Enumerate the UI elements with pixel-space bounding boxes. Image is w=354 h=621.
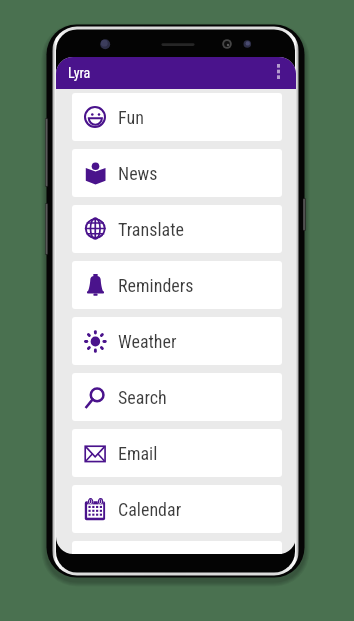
staticText: Search: [118, 387, 167, 408]
button[interactable]: Reminders: [72, 261, 282, 309]
staticText: Lyra: [68, 65, 91, 81]
staticText: Translate: [118, 219, 184, 240]
staticText: Email: [118, 443, 158, 464]
staticText: Reminders: [118, 275, 194, 296]
staticText: News: [118, 163, 158, 184]
button[interactable]: Weather: [72, 317, 282, 365]
button[interactable]: Email: [72, 429, 282, 477]
staticText: Calendar: [118, 499, 182, 520]
button[interactable]: Translate: [72, 205, 282, 253]
staticText: Fun: [118, 107, 144, 128]
button[interactable]: Search: [72, 373, 282, 421]
button[interactable]: Fun: [72, 93, 282, 141]
button[interactable]: More options: [270, 57, 296, 89]
button[interactable]: News: [72, 149, 282, 197]
button[interactable]: Calendar: [72, 485, 282, 533]
staticText: Weather: [118, 331, 177, 352]
